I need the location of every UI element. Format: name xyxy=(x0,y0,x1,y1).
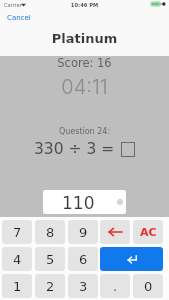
staticText: 0 xyxy=(144,279,153,294)
button[interactable]: Enter xyxy=(100,247,163,271)
button[interactable]: 3 xyxy=(68,274,98,298)
staticText: 9 xyxy=(79,225,88,240)
button[interactable]: 0 xyxy=(133,274,163,298)
staticText: 7 xyxy=(13,225,22,240)
staticText: 1 xyxy=(13,279,22,294)
staticText: Platinum xyxy=(0,31,169,46)
staticText: 2 xyxy=(46,279,55,294)
staticText: 6 xyxy=(79,252,88,267)
button[interactable]: 9 xyxy=(68,220,98,244)
staticText: 4 xyxy=(13,252,22,267)
button[interactable]: Clear text xyxy=(117,199,123,205)
staticText: . xyxy=(113,279,118,294)
button[interactable]: Cancel xyxy=(2,10,36,26)
staticText: Cancel xyxy=(7,14,31,22)
staticText: 330 ÷ 3 = xyxy=(34,140,115,158)
button[interactable]: AC xyxy=(133,220,163,244)
button[interactable]: 5 xyxy=(35,247,65,271)
staticText: 110 xyxy=(62,193,95,213)
button[interactable]: 2 xyxy=(35,274,65,298)
button[interactable]: 6 xyxy=(68,247,98,271)
staticText: AC xyxy=(140,226,157,239)
button[interactable]: 8 xyxy=(35,220,65,244)
staticText: Score: 16 xyxy=(0,56,169,69)
button[interactable]: 4 xyxy=(2,247,32,271)
button[interactable]: 110 xyxy=(43,190,126,214)
button[interactable]: Backspace xyxy=(100,220,130,244)
staticText: 5 xyxy=(46,252,55,267)
button[interactable]: 7 xyxy=(2,220,32,244)
button[interactable]: . xyxy=(100,274,130,298)
staticText: 8 xyxy=(46,225,55,240)
staticText: Question 24: xyxy=(0,127,169,136)
staticText: Carrier xyxy=(4,2,22,8)
button[interactable]: 1 xyxy=(2,274,32,298)
staticText: 10:46 PM xyxy=(0,2,169,8)
staticText: 3 xyxy=(79,279,88,294)
staticText: 04:11 xyxy=(0,75,169,99)
